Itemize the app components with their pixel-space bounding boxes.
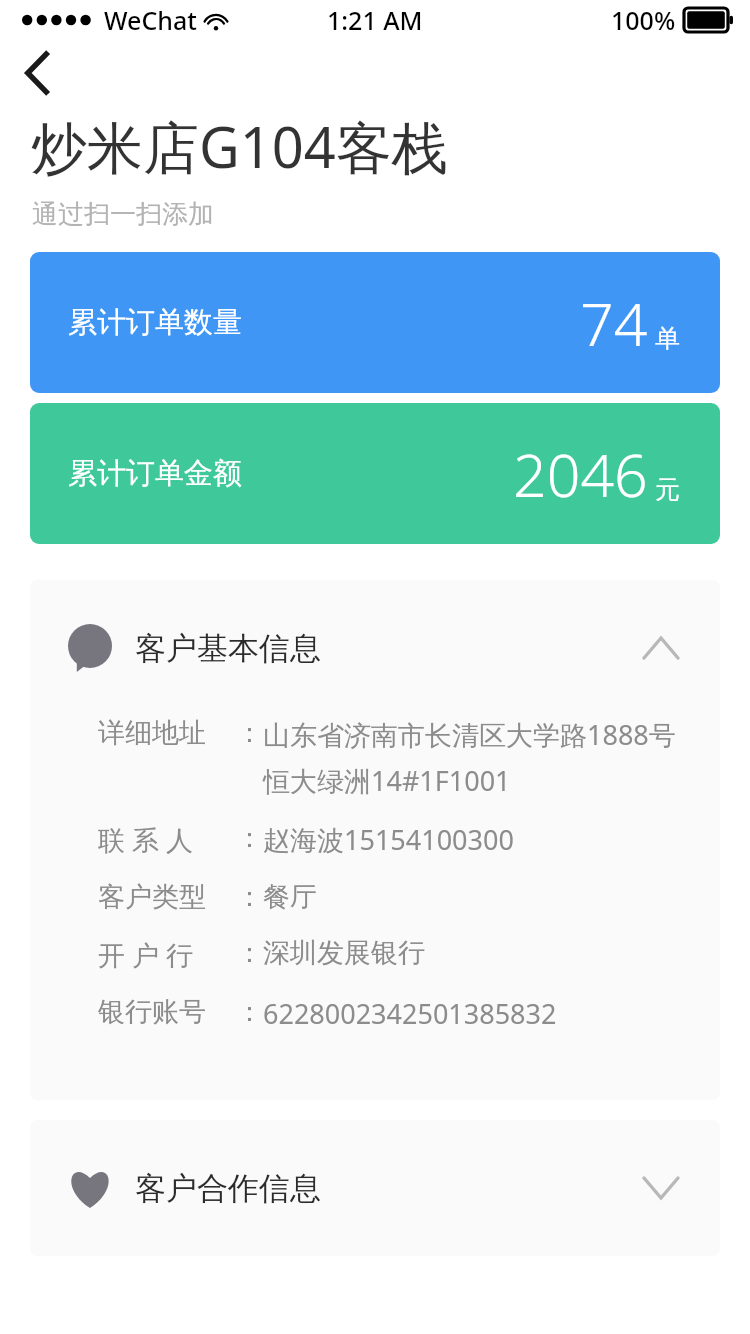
button[interactable]: 累计订单金额: [30, 403, 720, 544]
staticText: 2046: [513, 434, 648, 514]
button[interactable]: 累计订单数量: [30, 252, 720, 393]
staticText: ：: [236, 821, 263, 855]
staticText: WeChat: [104, 3, 197, 37]
staticText: 客户合作信息: [135, 1169, 321, 1208]
staticText: 元: [655, 474, 680, 505]
staticText: 74: [580, 283, 648, 363]
staticText: ：: [236, 880, 263, 914]
staticText: 炒米店G104客栈: [31, 108, 448, 184]
staticText: 山东省济南市长清区大学路1888号恒大绿洲14#1F1001: [263, 716, 690, 799]
staticText: 1:21 AM: [327, 3, 423, 37]
button[interactable]: Back: [0, 40, 74, 105]
staticText: 累计订单数量: [68, 304, 242, 341]
staticText: 开 户 行: [98, 936, 236, 973]
staticText: 客户类型: [98, 880, 236, 914]
button[interactable]: 客户合作信息: [30, 1120, 720, 1256]
staticText: 赵海波15154100300: [263, 821, 690, 858]
staticText: ：: [236, 716, 263, 750]
staticText: 通过扫一扫添加: [32, 198, 214, 231]
button[interactable]: 客户基本信息: [30, 580, 720, 716]
staticText: 餐厅: [263, 880, 690, 914]
staticText: ：: [236, 995, 263, 1029]
staticText: 联 系 人: [98, 821, 236, 858]
staticText: 深圳发展银行: [263, 936, 690, 970]
staticText: 100%: [611, 3, 676, 37]
staticText: 详细地址: [98, 716, 236, 750]
staticText: 6228002342501385832: [263, 995, 690, 1032]
staticText: ：: [236, 936, 263, 970]
staticText: 单: [655, 323, 680, 354]
staticText: 累计订单金额: [68, 455, 242, 492]
staticText: 银行账号: [98, 995, 236, 1029]
staticText: 客户基本信息: [135, 629, 321, 668]
